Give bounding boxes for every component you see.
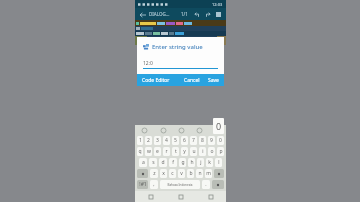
staticText: 7 — [192, 137, 195, 144]
button[interactable]: Recents — [135, 191, 166, 202]
staticText: 1 — [139, 137, 142, 144]
staticText: 8 — [201, 137, 204, 144]
staticText: r — [165, 148, 168, 155]
button[interactable]: 5 — [172, 136, 179, 145]
staticText: q — [138, 148, 142, 155]
staticText: c — [171, 170, 174, 177]
button[interactable]: t — [172, 147, 179, 156]
button[interactable]: h — [188, 158, 195, 167]
button[interactable]: p — [217, 147, 224, 156]
staticText: x — [162, 170, 165, 177]
staticText: 12:0 — [143, 60, 153, 67]
button[interactable]: sticker — [154, 125, 172, 135]
button[interactable]: Cancel — [184, 77, 200, 84]
button[interactable]: y — [181, 147, 188, 156]
button[interactable]: b — [187, 169, 194, 178]
button[interactable]: Code Editor — [142, 77, 170, 84]
button[interactable]: Shift — [137, 169, 148, 178]
button[interactable]: f — [169, 158, 177, 167]
button[interactable]: n — [196, 169, 203, 178]
staticText: w — [147, 148, 151, 155]
button[interactable]: d — [159, 158, 167, 167]
staticText: 12:03 — [212, 2, 223, 7]
staticText: 5 — [174, 137, 177, 144]
staticText: h — [190, 159, 194, 166]
staticText: g — [181, 159, 185, 166]
staticText: o — [210, 148, 214, 155]
button[interactable]: Save — [214, 10, 223, 19]
staticText: 4 — [165, 137, 168, 144]
button[interactable]: Back — [196, 191, 226, 202]
staticText: p — [219, 148, 223, 155]
button[interactable]: Redo — [203, 10, 212, 19]
staticText: b — [189, 170, 193, 177]
button[interactable]: 0 — [217, 136, 224, 145]
button[interactable]: s — [149, 158, 157, 167]
button[interactable]: !#1 — [137, 180, 148, 189]
staticText: !#1 — [139, 181, 147, 188]
staticText: 6 — [183, 137, 186, 144]
button[interactable]: e — [154, 147, 161, 156]
staticText: , — [153, 181, 155, 188]
staticText: 9 — [210, 137, 213, 144]
button[interactable]: 6 — [181, 136, 188, 145]
staticText: k — [208, 159, 211, 166]
button[interactable]: q — [137, 147, 143, 156]
button[interactable]: mic — [172, 125, 190, 135]
staticText: i — [202, 148, 204, 155]
button[interactable]: r — [163, 147, 170, 156]
button[interactable]: k — [206, 158, 213, 167]
button[interactable]: 9 — [208, 136, 215, 145]
staticText: n — [198, 170, 202, 177]
button[interactable]: 7 — [190, 136, 197, 145]
staticText: d — [161, 159, 165, 166]
button[interactable]: c — [169, 169, 176, 178]
staticText: j — [200, 159, 202, 166]
staticText: s — [152, 159, 155, 166]
button[interactable]: x — [160, 169, 167, 178]
staticText: y — [183, 148, 186, 155]
button[interactable]: z — [150, 169, 158, 178]
button[interactable]: . — [202, 180, 210, 189]
staticText: a — [142, 159, 145, 166]
staticText: u — [192, 148, 196, 155]
button[interactable]: a — [139, 158, 147, 167]
button[interactable]: o — [208, 147, 215, 156]
button[interactable]: v — [178, 169, 185, 178]
button[interactable]: Bahasa Indonesia — [160, 180, 200, 189]
button[interactable]: Backspace — [214, 169, 224, 178]
staticText: 0 — [216, 120, 222, 132]
button[interactable]: , — [150, 180, 158, 189]
button[interactable]: w — [145, 147, 152, 156]
button[interactable]: Enter — [212, 180, 224, 189]
staticText: m — [206, 170, 211, 177]
button[interactable]: j — [197, 158, 204, 167]
button[interactable]: 8 — [199, 136, 206, 145]
staticText: v — [180, 170, 183, 177]
button[interactable]: settings — [190, 125, 208, 135]
staticText: 3 — [156, 137, 159, 144]
button[interactable]: Back — [138, 10, 147, 19]
staticText: Bahasa Indonesia — [167, 183, 193, 187]
staticText: 2 — [147, 137, 150, 144]
button[interactable]: Undo — [192, 10, 201, 19]
staticText: f — [172, 159, 174, 166]
button[interactable]: emoji — [135, 125, 154, 135]
button[interactable]: g — [179, 158, 186, 167]
button[interactable]: m — [205, 169, 212, 178]
staticText: l — [218, 159, 220, 166]
button[interactable]: Save — [208, 77, 219, 84]
button[interactable]: 4 — [163, 136, 170, 145]
button[interactable]: 2 — [145, 136, 152, 145]
button[interactable]: i — [199, 147, 206, 156]
staticText: DIALOG... — [149, 11, 170, 17]
button[interactable]: 3 — [154, 136, 161, 145]
button[interactable]: l — [215, 158, 222, 167]
button[interactable]: 1 — [137, 136, 143, 145]
staticText: 0 — [219, 137, 222, 144]
button[interactable]: u — [190, 147, 197, 156]
button[interactable]: 1/1 — [181, 11, 188, 17]
staticText: z — [153, 170, 156, 177]
staticText: Enter string value — [152, 43, 203, 51]
button[interactable]: Home — [166, 191, 196, 202]
